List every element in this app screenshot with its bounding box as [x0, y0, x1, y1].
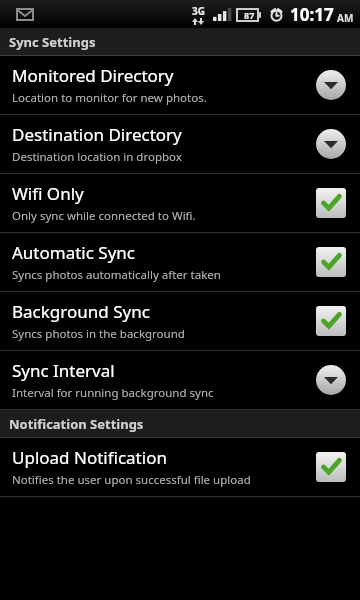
button[interactable]: Automatic Sync — [0, 233, 360, 292]
staticText: 10:17 — [290, 3, 334, 26]
staticText: Background Sync — [12, 300, 150, 323]
staticText: Destination location in dropbox — [12, 149, 182, 165]
button[interactable]: Open list — [316, 70, 346, 100]
button[interactable]: Toggle setting — [316, 306, 346, 336]
staticText: Automatic Sync — [12, 241, 135, 264]
button[interactable]: Toggle setting — [316, 452, 346, 482]
button[interactable]: Monitored Directory — [0, 56, 360, 115]
button[interactable]: Open list — [316, 365, 346, 395]
staticText: Notification Settings — [9, 415, 144, 433]
staticText: Syncs photos automatically after taken — [12, 267, 221, 283]
staticText: Only sync while connected to Wifi. — [12, 208, 196, 224]
staticText: AM — [337, 11, 354, 25]
button[interactable]: Destination Directory — [0, 115, 360, 174]
staticText: 3G — [192, 4, 205, 18]
staticText: 87 — [244, 9, 255, 21]
staticText: Upload Notification — [12, 446, 167, 469]
staticText: Wifi Only — [12, 182, 84, 205]
button[interactable]: Background Sync — [0, 292, 360, 351]
staticText: Interval for running background sync — [12, 385, 214, 401]
button[interactable]: Toggle setting — [316, 247, 346, 277]
button[interactable]: Upload Notification — [0, 438, 360, 497]
staticText: Sync Interval — [12, 359, 115, 382]
staticText: Notifies the user upon successful file u… — [12, 472, 251, 488]
staticText: Destination Directory — [12, 123, 182, 146]
button[interactable]: Sync Interval — [0, 351, 360, 410]
staticText: Syncs photos in the background — [12, 326, 185, 342]
button[interactable]: Toggle setting — [316, 188, 346, 218]
staticText: Location to monitor for new photos. — [12, 90, 207, 106]
button[interactable]: Wifi Only — [0, 174, 360, 233]
button[interactable]: Open list — [316, 129, 346, 159]
staticText: Sync Settings — [9, 33, 96, 51]
staticText: Monitored Directory — [12, 64, 174, 87]
